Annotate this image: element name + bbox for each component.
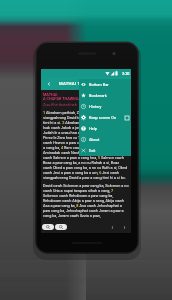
button[interactable]: History	[79, 101, 131, 112]
button[interactable]: Exit	[79, 145, 131, 156]
staticText: MATHAI	[43, 92, 58, 96]
button[interactable]: Next chapter	[120, 223, 128, 231]
button[interactable]: Previous chapter	[108, 223, 116, 231]
staticText: Zisu Khri thutsifinah	[43, 102, 77, 106]
staticText: Bottom Bar	[89, 82, 109, 87]
button[interactable]: Zoom in	[55, 224, 67, 230]
button[interactable]: Bookmark	[79, 90, 131, 101]
staticText: Exit	[89, 148, 96, 153]
button[interactable]: Help	[79, 123, 131, 134]
button[interactable]: About	[79, 134, 131, 145]
button[interactable]: Zoom out	[42, 224, 54, 230]
staticText: Help	[89, 126, 97, 131]
staticText: About	[89, 137, 100, 142]
button[interactable]: Back	[41, 77, 56, 90]
staticText: Bookmark	[89, 93, 107, 98]
staticText: History	[89, 104, 102, 109]
staticText: A CHAPAR THAWNGA	[43, 96, 81, 100]
staticText: MATHAI 1	[59, 81, 81, 86]
staticText: Keep screen On	[89, 115, 117, 120]
staticText: 1 Abraham pathiah, Zisu Khri thutsifinah…	[43, 110, 129, 180]
button[interactable]: Keep screen On	[79, 112, 131, 123]
staticText: 3:20	[122, 71, 130, 75]
button[interactable]: Bottom Bar	[79, 79, 131, 90]
staticText: David cawh Solomon a paw cang ka, Solomo…	[43, 183, 129, 218]
